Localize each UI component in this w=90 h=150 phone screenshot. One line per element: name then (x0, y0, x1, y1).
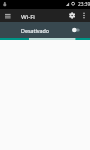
button[interactable]: More options (79, 9, 90, 22)
button[interactable]: Desativado (0, 22, 90, 38)
button[interactable]: Open navigation drawer (0, 9, 13, 22)
staticText: 23:39 (78, 1, 90, 8)
button[interactable]: Wi-Fi switch, off (68, 23, 84, 37)
staticText: Wi-Fi (21, 12, 35, 20)
staticText: Desativado (21, 27, 50, 34)
button[interactable]: Settings (66, 9, 79, 22)
